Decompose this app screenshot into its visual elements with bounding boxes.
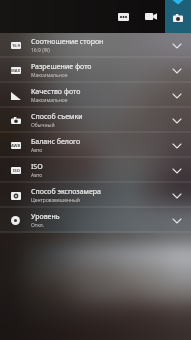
button[interactable]: Способ экспозамера — [0, 183, 191, 208]
button[interactable]: More options — [109, 0, 137, 33]
staticText: Уровень — [31, 212, 60, 222]
button[interactable]: Способ съемки — [0, 108, 191, 133]
staticText: Способ съемки — [31, 112, 83, 122]
staticText: Качество фото — [31, 87, 81, 97]
staticText: AWB — [11, 143, 21, 148]
staticText: Разрешение фото — [31, 62, 92, 72]
staticText: ISO — [13, 168, 20, 173]
staticText: 16:9 — [12, 43, 20, 48]
staticText: Баланс белого — [31, 137, 81, 147]
staticText: ISO — [31, 162, 43, 172]
staticText: Соотношение сторон — [31, 37, 104, 47]
button[interactable]: AWB — [0, 133, 191, 158]
staticText: 16:9 (W) — [31, 47, 50, 54]
staticText: Максимальное — [31, 97, 68, 104]
staticText: Центровзвешенный — [31, 197, 80, 204]
button[interactable]: Video mode — [137, 0, 165, 33]
staticText: MAX — [11, 68, 21, 73]
staticText: Максимальное — [31, 72, 68, 79]
button[interactable]: Photo mode — [165, 0, 191, 33]
staticText: Авто — [31, 147, 43, 154]
button[interactable]: ISO — [0, 158, 191, 183]
staticText: Обычный — [31, 122, 55, 129]
button[interactable]: Уровень — [0, 208, 191, 233]
button[interactable]: 16:9 — [0, 33, 191, 58]
button[interactable]: MAX — [0, 58, 191, 83]
staticText: Способ экспозамера — [31, 187, 101, 197]
staticText: Откл. — [31, 222, 45, 229]
button[interactable]: Качество фото — [0, 83, 191, 108]
staticText: Авто — [31, 172, 43, 179]
